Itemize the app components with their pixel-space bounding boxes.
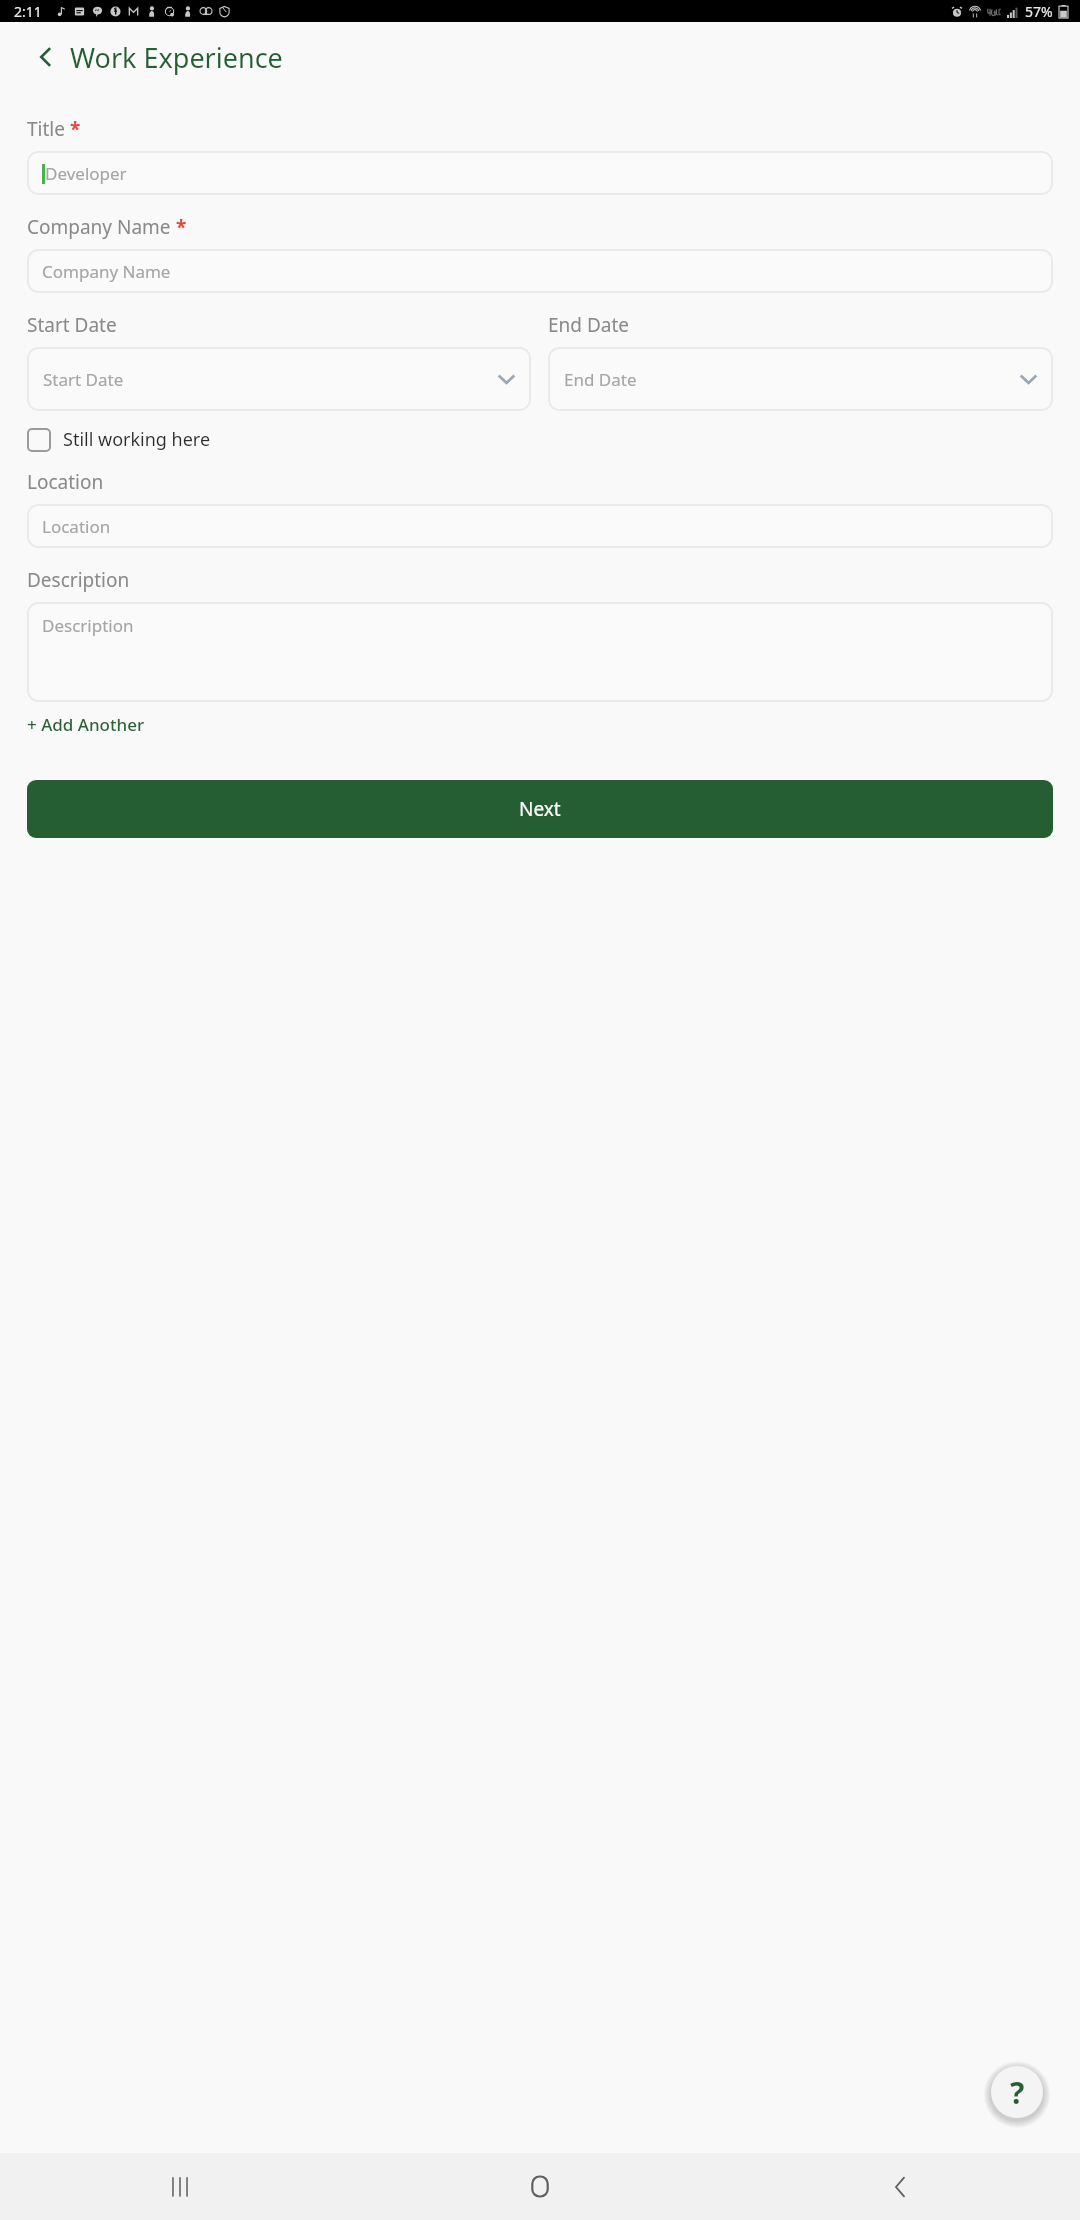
button[interactable]: Developer <box>27 151 1053 195</box>
staticText: Location <box>42 515 111 538</box>
staticText: * <box>176 214 187 240</box>
staticText: Company Name <box>27 214 171 240</box>
staticText: Developer <box>45 162 127 185</box>
staticText: Company Name <box>42 260 171 283</box>
staticText: End Date <box>548 312 630 338</box>
button[interactable]: Home <box>360 2153 720 2220</box>
staticText: 2:11 <box>14 2 42 21</box>
button[interactable]: Recent apps <box>0 2153 360 2220</box>
staticText: Description <box>42 614 134 637</box>
staticText: * <box>70 116 81 142</box>
button[interactable]: Description <box>27 602 1053 702</box>
staticText: Still working here <box>63 427 211 452</box>
button[interactable]: End Date <box>548 347 1053 411</box>
staticText: + Add Another <box>27 713 145 736</box>
staticText: Location <box>27 469 104 495</box>
staticText: Work Experience <box>70 39 283 76</box>
staticText: Start Date <box>43 368 124 391</box>
button[interactable]: + Add Another <box>27 713 145 736</box>
button[interactable]: Back <box>720 2153 1080 2220</box>
staticText: End Date <box>564 368 637 391</box>
staticText: Description <box>27 567 130 593</box>
staticText: Next <box>519 796 561 822</box>
button[interactable]: Still working here <box>27 427 211 452</box>
button[interactable]: Start Date <box>27 347 531 411</box>
button[interactable]: Help <box>990 2065 1044 2119</box>
staticText: ? <box>1010 2072 1025 2113</box>
staticText: 57% <box>1025 2 1053 21</box>
button[interactable]: Location <box>27 504 1053 548</box>
button[interactable]: Back <box>26 37 66 77</box>
staticText: Title <box>27 116 65 142</box>
button[interactable]: Next <box>27 780 1053 838</box>
button[interactable]: Company Name <box>27 249 1053 293</box>
staticText: Start Date <box>27 312 117 338</box>
